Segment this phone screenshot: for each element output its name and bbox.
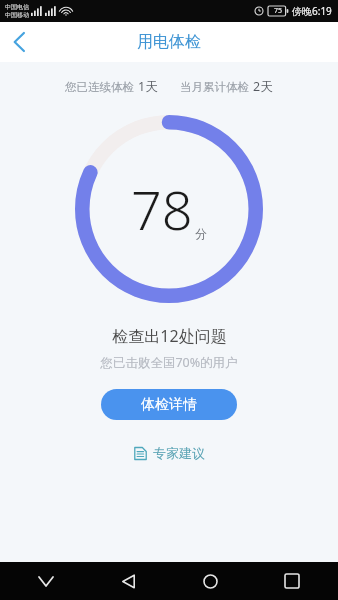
- staticText: 中国电信: [5, 3, 29, 11]
- staticText: 1天: [138, 78, 158, 95]
- button[interactable]: Home: [190, 562, 230, 600]
- staticText: 75: [274, 6, 283, 16]
- button[interactable]: Back: [0, 22, 40, 62]
- button[interactable]: Hide keyboard: [26, 562, 66, 600]
- staticText: 分: [195, 226, 207, 241]
- staticText: 78: [131, 172, 193, 246]
- button[interactable]: Back: [108, 562, 148, 600]
- staticText: 当月累计体检: [180, 80, 249, 94]
- staticText: 检查出12处问题: [112, 325, 227, 347]
- staticText: 您已连续体检: [65, 80, 134, 94]
- button[interactable]: 专家建议: [128, 442, 211, 464]
- staticText: 傍晚6:19: [292, 4, 332, 18]
- staticText: 您已击败全国70%的用户: [100, 354, 238, 371]
- staticText: 2天: [253, 78, 273, 95]
- button[interactable]: Recent apps: [272, 562, 312, 600]
- staticText: 体检详情: [141, 396, 197, 414]
- staticText: 中国移动: [5, 11, 29, 19]
- button[interactable]: 体检详情: [101, 389, 237, 420]
- staticText: 用电体检: [137, 32, 201, 52]
- staticText: 专家建议: [153, 445, 205, 461]
